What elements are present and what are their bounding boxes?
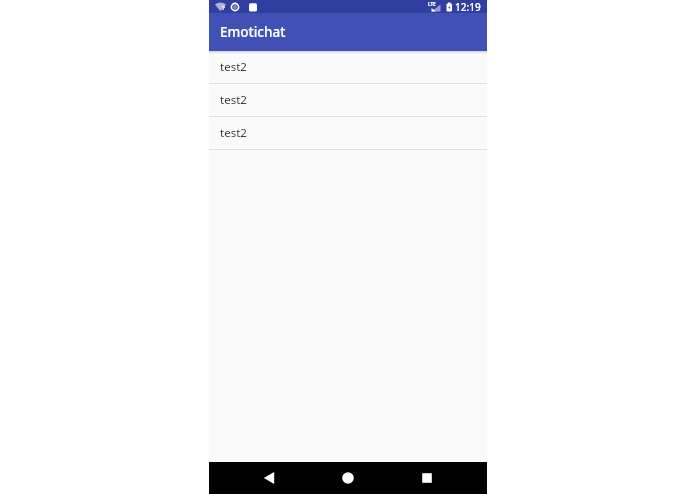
staticText: test2 (220, 125, 247, 141)
staticText: Emotichat (220, 23, 286, 41)
staticText: test2 (220, 92, 247, 108)
staticText: test2 (220, 59, 247, 75)
staticText: LTE (428, 1, 436, 7)
staticText: ? (222, 4, 225, 12)
staticText: 12:19 (455, 0, 481, 13)
